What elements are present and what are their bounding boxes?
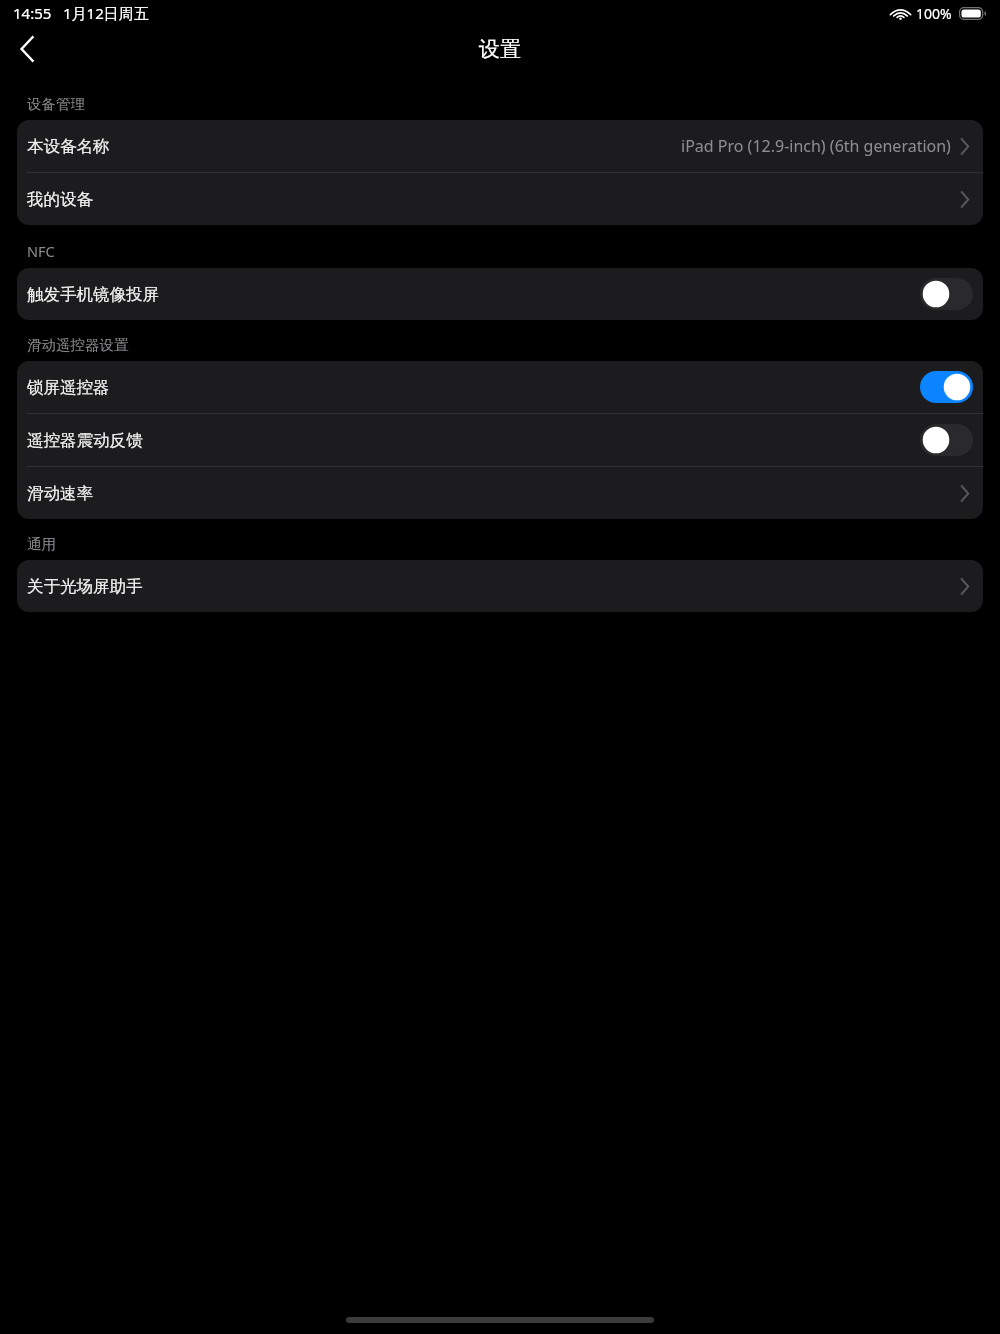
staticText: 滑动速率 bbox=[27, 483, 93, 504]
button[interactable]: 关于光场屏助手 bbox=[17, 560, 983, 612]
staticText: 触发手机镜像投屏 bbox=[27, 284, 159, 305]
staticText: 滑动遥控器设置 bbox=[27, 336, 129, 354]
staticText: 本设备名称 bbox=[27, 136, 110, 157]
staticText: NFC bbox=[27, 241, 55, 261]
button[interactable]: Back bbox=[0, 26, 54, 72]
button[interactable]: 我的设备 bbox=[17, 173, 983, 225]
staticText: 我的设备 bbox=[27, 189, 93, 210]
staticText: 通用 bbox=[27, 535, 56, 553]
staticText: 1月12日周五 bbox=[63, 3, 149, 23]
button[interactable]: 锁屏遥控器 bbox=[920, 371, 973, 403]
staticText: 100% bbox=[916, 4, 952, 23]
staticText: 关于光场屏助手 bbox=[27, 576, 143, 597]
staticText: iPad Pro (12.9-inch) (6th generation) bbox=[681, 135, 951, 157]
button[interactable]: 遥控器震动反馈 bbox=[920, 424, 973, 456]
button[interactable]: 触发手机镜像投屏 bbox=[920, 278, 973, 310]
staticText: 14:55 bbox=[13, 3, 52, 23]
button[interactable]: 滑动速率 bbox=[17, 467, 983, 519]
button[interactable]: 本设备名称 bbox=[17, 120, 983, 172]
staticText: 锁屏遥控器 bbox=[27, 377, 110, 398]
staticText: 设置 bbox=[479, 36, 521, 62]
staticText: 设备管理 bbox=[27, 95, 85, 113]
staticText: 遥控器震动反馈 bbox=[27, 430, 143, 451]
